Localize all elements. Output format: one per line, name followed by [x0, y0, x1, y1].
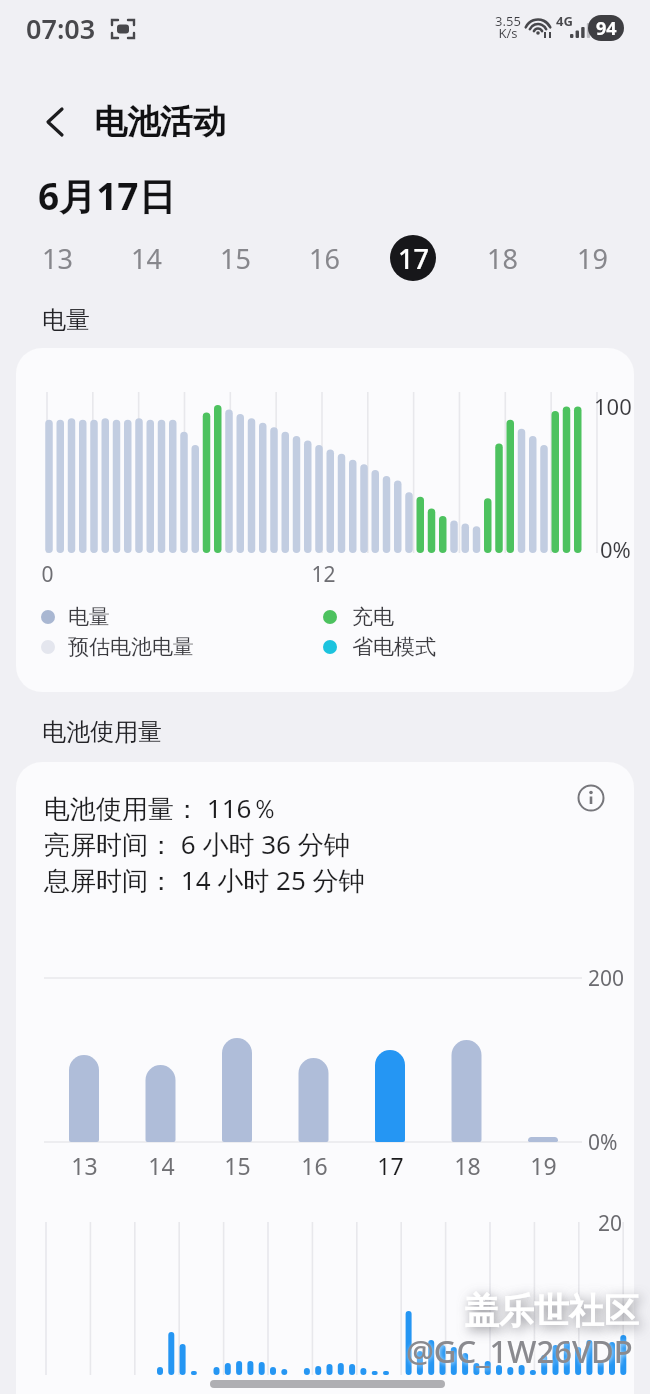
- staticText: 0: [41, 560, 54, 589]
- button[interactable]: [40, 104, 76, 140]
- staticText: 12: [311, 560, 336, 589]
- button[interactable]: 17: [390, 235, 436, 281]
- staticText: 盖乐世社区: [464, 1289, 639, 1333]
- staticText: 13: [71, 1150, 98, 1181]
- staticText: 20: [598, 1209, 623, 1238]
- staticText: 省电模式: [352, 634, 436, 660]
- staticText: 18: [454, 1150, 481, 1181]
- staticText: 14: [148, 1150, 175, 1181]
- staticText: 息屏时间： 14 小时 25 分钟: [44, 862, 365, 898]
- button[interactable]: 16: [301, 235, 347, 281]
- staticText: 电池活动: [94, 101, 226, 143]
- staticText: 16: [309, 240, 340, 277]
- staticText: 电量: [42, 305, 90, 335]
- staticText: 19: [577, 240, 608, 277]
- staticText: 100: [594, 391, 632, 421]
- staticText: 16: [301, 1150, 328, 1181]
- staticText: 94: [596, 16, 617, 41]
- button[interactable]: 15: [212, 235, 258, 281]
- button[interactable]: 13: [34, 235, 80, 281]
- staticText: 0%: [600, 534, 631, 564]
- staticText: 07:03: [26, 10, 96, 47]
- staticText: 预估电池电量: [68, 634, 194, 660]
- button[interactable]: 14: [123, 235, 169, 281]
- staticText: 0%: [588, 1128, 618, 1157]
- staticText: 电池使用量: [42, 717, 162, 747]
- staticText: 亮屏时间： 6 小时 36 分钟: [44, 826, 350, 862]
- staticText: 3.55: [495, 12, 521, 30]
- staticText: 充电: [352, 604, 394, 630]
- staticText: 4G: [556, 12, 573, 30]
- staticText: 15: [224, 1150, 251, 1181]
- staticText: 200: [588, 964, 625, 993]
- staticText: K/s: [498, 24, 518, 42]
- staticText: 电池使用量： 116％: [44, 790, 278, 826]
- staticText: 17: [377, 1150, 404, 1181]
- staticText: 电量: [68, 604, 110, 630]
- staticText: 13: [42, 240, 73, 277]
- staticText: 19: [530, 1150, 557, 1181]
- staticText: 14: [131, 240, 162, 277]
- staticText: 6月17日: [38, 170, 176, 221]
- staticText: @GC_1W26VDP: [406, 1330, 633, 1372]
- button[interactable]: 18: [479, 235, 525, 281]
- staticText: 18: [487, 240, 518, 277]
- staticText: 17: [398, 240, 429, 277]
- button[interactable]: [576, 783, 606, 813]
- button[interactable]: 19: [569, 235, 615, 281]
- staticText: 15: [220, 240, 251, 277]
